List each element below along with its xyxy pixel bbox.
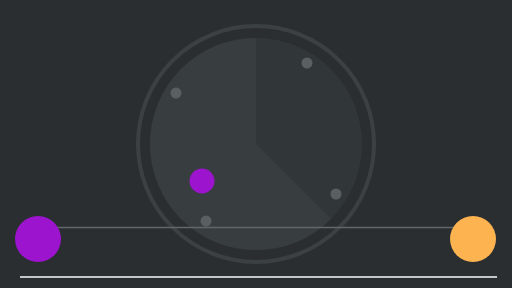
button[interactable]: Purple colour option [15, 216, 61, 262]
button[interactable]: Orange colour option [450, 216, 496, 262]
button[interactable]: Watch face preview [136, 24, 376, 264]
